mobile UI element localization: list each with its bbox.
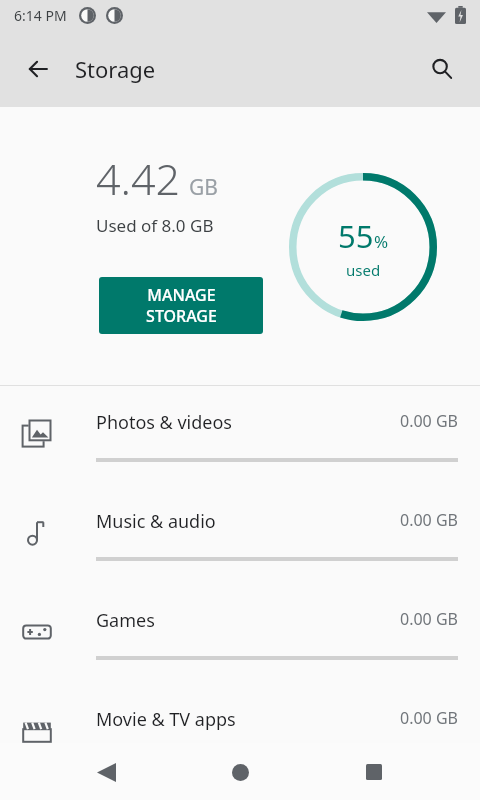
button[interactable]: MANAGE STORAGE	[99, 277, 263, 334]
staticText: MANAGE STORAGE	[146, 284, 217, 327]
staticText: 6:14 PM	[14, 6, 67, 25]
staticText: 55	[338, 215, 374, 257]
button[interactable]: Back	[14, 45, 62, 93]
button[interactable]: Games	[0, 584, 480, 683]
staticText: 0.00 GB	[400, 608, 458, 630]
staticText: 4.42	[96, 149, 181, 208]
staticText: Storage	[75, 54, 156, 84]
button[interactable]: Photos & videos	[0, 386, 480, 485]
staticText: %	[374, 230, 389, 253]
staticText: GB	[189, 173, 218, 202]
staticText: 0.00 GB	[400, 707, 458, 729]
staticText: Movie & TV apps	[96, 707, 236, 732]
staticText: used	[346, 260, 381, 280]
staticText: Photos & videos	[96, 410, 232, 435]
button[interactable]: Recent apps	[346, 744, 402, 800]
staticText: Used of 8.0 GB	[96, 214, 214, 237]
staticText: 0.00 GB	[400, 509, 458, 531]
button[interactable]: Music & audio	[0, 485, 480, 584]
button[interactable]: Movie & TV apps	[0, 683, 480, 782]
staticText: Games	[96, 608, 155, 633]
button[interactable]: Back	[78, 744, 134, 800]
staticText: Music & audio	[96, 509, 216, 534]
button[interactable]: Home	[212, 744, 268, 800]
button[interactable]: Search	[418, 45, 466, 93]
staticText: 0.00 GB	[400, 410, 458, 432]
